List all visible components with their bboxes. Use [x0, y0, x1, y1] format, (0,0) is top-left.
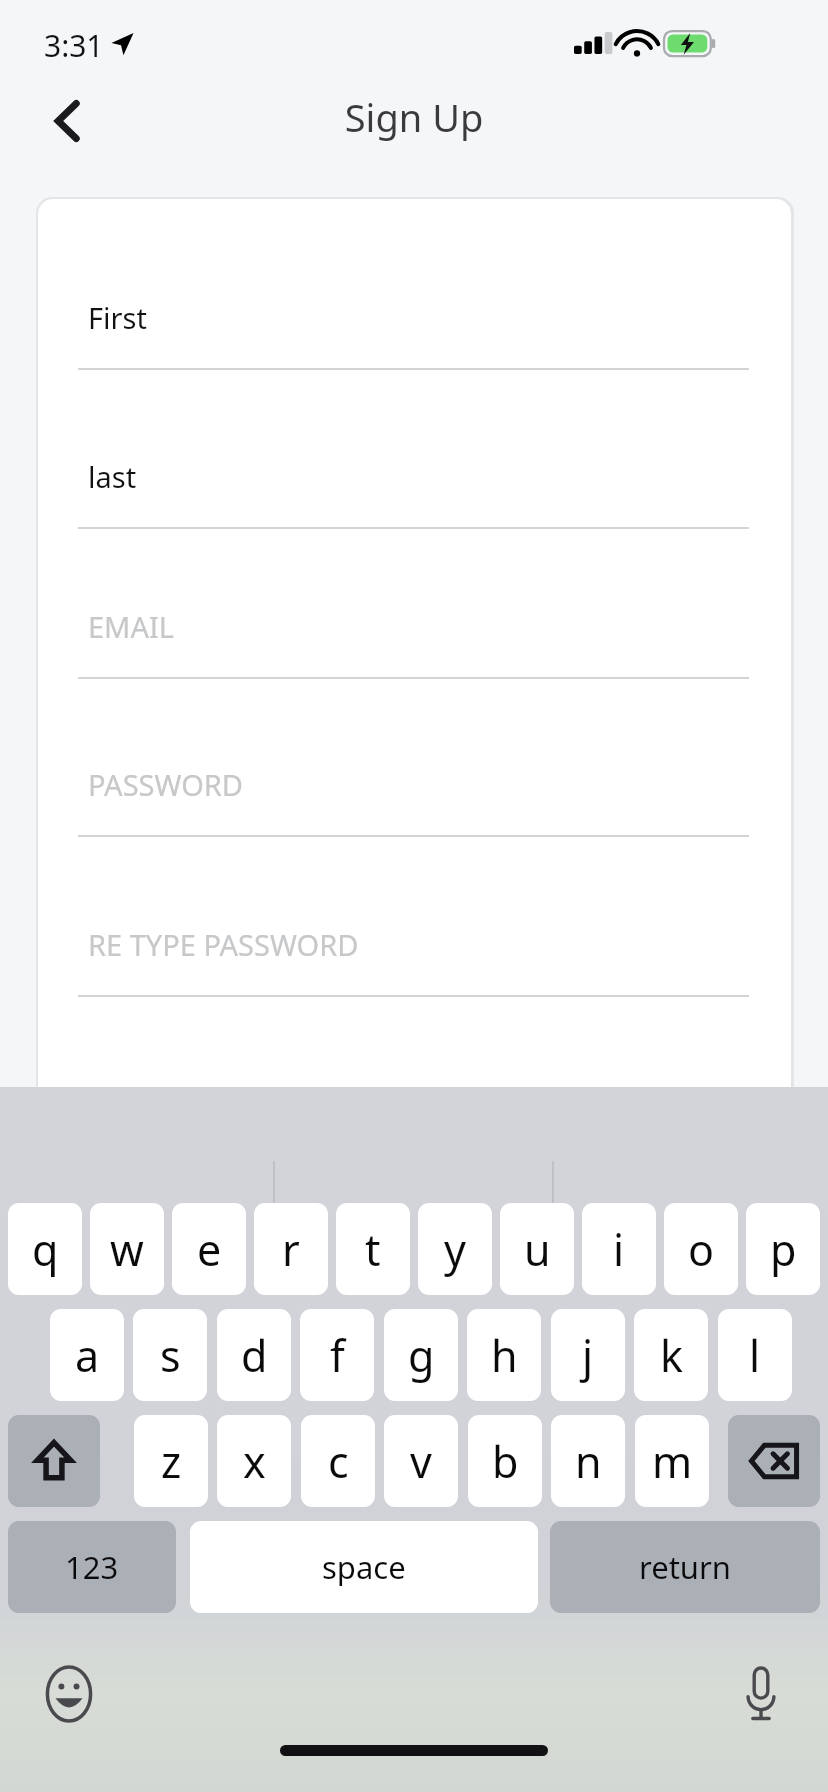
staticText: EMAIL — [88, 607, 174, 646]
staticText: v — [410, 1432, 432, 1491]
staticText: w — [110, 1220, 144, 1279]
staticText: m — [652, 1432, 693, 1491]
button[interactable]: v — [384, 1415, 458, 1507]
button[interactable]: y — [418, 1203, 492, 1295]
button[interactable]: i — [582, 1203, 656, 1295]
staticText: x — [243, 1432, 266, 1491]
staticText: b — [492, 1432, 519, 1491]
button[interactable]: q — [8, 1203, 82, 1295]
button[interactable]: t — [336, 1203, 410, 1295]
staticText: k — [660, 1326, 683, 1385]
staticText: d — [241, 1326, 268, 1385]
button[interactable]: g — [384, 1309, 458, 1401]
staticText: 123 — [65, 1546, 119, 1588]
staticText: p — [770, 1220, 797, 1279]
staticText: e — [197, 1220, 222, 1279]
button[interactable]: c — [301, 1415, 375, 1507]
staticText: z — [161, 1432, 182, 1491]
staticText: i — [613, 1220, 625, 1279]
staticText: n — [575, 1432, 602, 1491]
button[interactable]: First — [78, 250, 750, 374]
staticText: PASSWORD — [88, 765, 244, 804]
staticText: c — [328, 1432, 349, 1491]
staticText: h — [491, 1326, 518, 1385]
staticText: t — [365, 1220, 381, 1279]
staticText: last — [88, 457, 137, 496]
button[interactable]: 123 — [8, 1521, 176, 1613]
button[interactable]: n — [551, 1415, 625, 1507]
staticText: u — [524, 1220, 551, 1279]
staticText: y — [444, 1220, 466, 1279]
button[interactable]: Shift — [8, 1415, 100, 1507]
button[interactable]: h — [467, 1309, 541, 1401]
button[interactable]: Back — [30, 84, 104, 158]
button[interactable]: j — [551, 1309, 625, 1401]
staticText: RE TYPE PASSWORD — [88, 925, 359, 964]
staticText: o — [688, 1220, 715, 1279]
button[interactable]: return — [550, 1521, 820, 1613]
button[interactable]: a — [50, 1309, 124, 1401]
button[interactable]: Emoji keyboard — [30, 1655, 108, 1733]
staticText: l — [749, 1326, 761, 1385]
staticText: j — [582, 1326, 594, 1385]
button[interactable]: space — [190, 1521, 538, 1613]
button[interactable]: x — [217, 1415, 291, 1507]
button[interactable]: e — [172, 1203, 246, 1295]
button[interactable]: last — [78, 409, 750, 533]
button[interactable]: z — [134, 1415, 208, 1507]
staticText: Sign Up — [0, 91, 828, 143]
button[interactable]: f — [300, 1309, 374, 1401]
button[interactable]: s — [133, 1309, 207, 1401]
button[interactable]: Voice input — [722, 1655, 800, 1733]
button[interactable]: w — [90, 1203, 164, 1295]
button[interactable]: u — [500, 1203, 574, 1295]
button[interactable]: b — [468, 1415, 542, 1507]
staticText: return — [639, 1546, 731, 1588]
staticText: r — [282, 1220, 300, 1279]
button[interactable]: k — [634, 1309, 708, 1401]
button[interactable]: r — [254, 1203, 328, 1295]
button[interactable]: d — [217, 1309, 291, 1401]
staticText: s — [160, 1326, 181, 1385]
staticText: g — [408, 1326, 435, 1385]
staticText: First — [88, 298, 147, 337]
button[interactable]: l — [718, 1309, 792, 1401]
staticText: 3:31 — [44, 25, 104, 66]
staticText: q — [32, 1220, 59, 1279]
staticText: space — [322, 1546, 406, 1588]
button[interactable]: o — [664, 1203, 738, 1295]
button[interactable]: Backspace — [728, 1415, 820, 1507]
button[interactable]: p — [746, 1203, 820, 1295]
button[interactable]: m — [635, 1415, 709, 1507]
button[interactable]: RE TYPE PASSWORD — [78, 877, 750, 1001]
button[interactable]: EMAIL — [78, 559, 750, 683]
staticText: a — [75, 1326, 100, 1385]
staticText: f — [330, 1326, 345, 1385]
button[interactable]: PASSWORD — [78, 717, 750, 841]
